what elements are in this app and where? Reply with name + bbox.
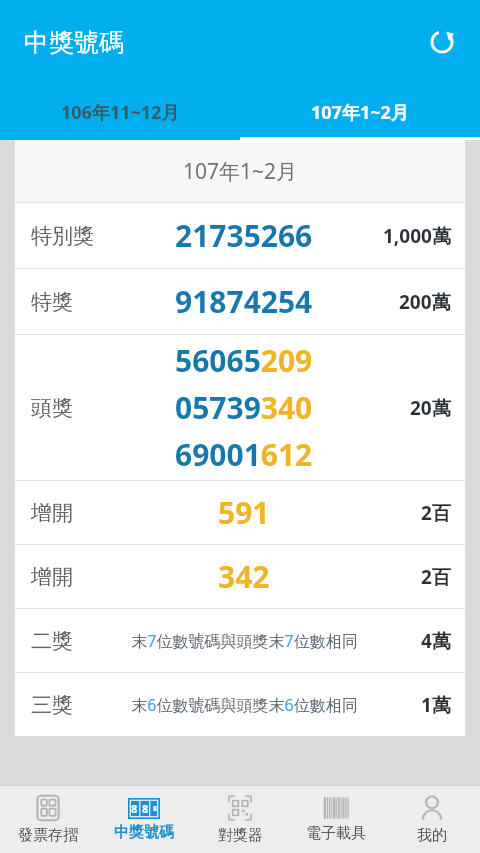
staticText: 05739340 — [175, 387, 313, 428]
staticText: 20萬 — [410, 395, 451, 421]
button[interactable]: 二獎 — [15, 609, 465, 672]
button[interactable]: 特別獎 — [15, 203, 465, 268]
staticText: 增開 — [31, 500, 73, 526]
staticText: 107年1~2月 — [183, 157, 298, 186]
staticText: 特別獎 — [31, 223, 94, 249]
button[interactable]: 特獎 — [15, 269, 465, 334]
button[interactable]: 頭獎 — [15, 335, 465, 480]
button[interactable]: 106年11~12月 — [0, 84, 240, 140]
staticText: 8 — [142, 801, 149, 816]
staticText: 增開 — [31, 564, 73, 590]
staticText: 對獎器 — [218, 826, 263, 845]
staticText: 342 — [218, 556, 270, 597]
staticText: 1,000萬 — [383, 223, 451, 249]
staticText: 中獎號碼 — [24, 27, 124, 58]
staticText: 1萬 — [421, 692, 451, 718]
button[interactable]: 對獎器 — [192, 786, 288, 853]
staticText: 107年1~2月 — [311, 100, 409, 125]
staticText: 末6位數號碼與頭獎末6位數相同 — [131, 694, 358, 716]
button[interactable]: 增開 — [15, 481, 465, 544]
staticText: 特獎 — [31, 289, 73, 315]
staticText: 三獎 — [31, 692, 73, 718]
staticText: 56065209 — [175, 340, 313, 381]
staticText: 二獎 — [31, 628, 73, 654]
button[interactable]: 三獎 — [15, 673, 465, 736]
button[interactable]: 增開 — [15, 545, 465, 608]
button[interactable]: 107年1~2月 — [240, 84, 480, 140]
staticText: 電子載具 — [306, 824, 366, 843]
staticText: 2百 — [421, 500, 451, 526]
staticText: 8 — [131, 801, 138, 816]
button[interactable]: Refresh — [418, 18, 466, 66]
staticText: 91874254 — [175, 281, 313, 322]
button[interactable]: 電子載具 — [288, 786, 384, 853]
staticText: 頭獎 — [31, 395, 73, 421]
staticText: 發票存摺 — [18, 826, 78, 845]
button[interactable]: 我的 — [384, 786, 480, 853]
staticText: 106年11~12月 — [61, 100, 180, 125]
staticText: 8 — [153, 804, 158, 814]
button[interactable]: 發票存摺 — [0, 786, 96, 853]
staticText: 200萬 — [399, 289, 451, 315]
staticText: 69001612 — [175, 434, 313, 475]
staticText: 我的 — [417, 826, 447, 845]
staticText: 591 — [218, 492, 270, 533]
staticText: 中獎號碼 — [114, 823, 174, 842]
button[interactable]: 8 — [96, 786, 192, 853]
staticText: 末7位數號碼與頭獎末7位數相同 — [131, 630, 358, 652]
staticText: 2百 — [421, 564, 451, 590]
staticText: 21735266 — [175, 215, 313, 256]
staticText: 4萬 — [421, 628, 451, 654]
